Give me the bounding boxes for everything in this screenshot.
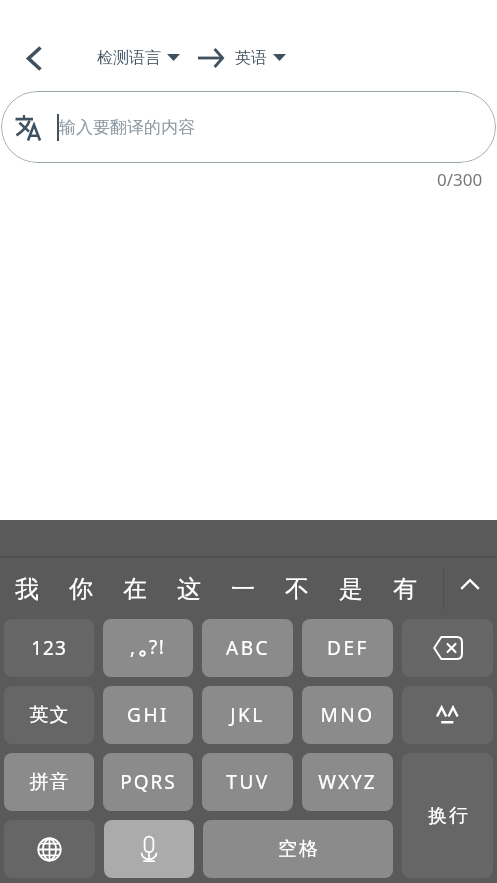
staticText: 输入要翻译的内容: [59, 117, 195, 138]
button[interactable]: 检测语言: [97, 40, 180, 76]
button[interactable]: 我: [0, 558, 54, 619]
staticText: 拼音: [29, 770, 69, 794]
staticText: 我: [15, 574, 39, 604]
button[interactable]: 换行: [402, 753, 493, 878]
staticText: 换行: [427, 804, 469, 828]
button[interactable]: 一: [216, 558, 270, 619]
staticText: TUV: [226, 769, 270, 795]
button[interactable]: ,: [103, 619, 193, 677]
button[interactable]: 这: [162, 558, 216, 619]
staticText: 英语: [235, 48, 267, 68]
button[interactable]: 空格: [203, 820, 393, 878]
button[interactable]: 英文: [4, 686, 94, 744]
button[interactable]: 英语: [235, 40, 286, 76]
staticText: 英文: [29, 703, 69, 727]
staticText: 一: [231, 574, 255, 604]
button[interactable]: 拼音: [4, 753, 94, 811]
button[interactable]: 123: [4, 619, 94, 677]
button[interactable]: Voice input: [104, 820, 194, 878]
staticText: 123: [31, 635, 67, 661]
button[interactable]: 有: [378, 558, 432, 619]
staticText: 是: [339, 574, 363, 604]
button[interactable]: ABC: [202, 619, 293, 677]
staticText: PQRS: [120, 769, 177, 795]
button[interactable]: GHI: [103, 686, 193, 744]
button[interactable]: WXYZ: [302, 753, 393, 811]
staticText: 空格: [277, 837, 319, 861]
staticText: MNO: [320, 702, 375, 728]
staticText: 有: [393, 574, 417, 604]
staticText: 检测语言: [97, 48, 161, 68]
button[interactable]: DEF: [302, 619, 393, 677]
button[interactable]: 输入要翻译的内容: [1, 91, 496, 163]
button[interactable]: Emoji: [402, 686, 493, 744]
staticText: GHI: [127, 702, 169, 728]
button[interactable]: Expand suggestions: [432, 558, 497, 619]
staticText: 不: [285, 574, 309, 604]
button[interactable]: PQRS: [103, 753, 193, 811]
staticText: ?!: [149, 634, 166, 660]
staticText: JKL: [230, 702, 265, 728]
button[interactable]: Back: [0, 28, 68, 88]
staticText: 0/300: [437, 168, 483, 191]
staticText: 你: [69, 574, 93, 604]
button[interactable]: 是: [324, 558, 378, 619]
button[interactable]: MNO: [302, 686, 393, 744]
staticText: 这: [177, 574, 201, 604]
button[interactable]: JKL: [202, 686, 293, 744]
staticText: ABC: [226, 635, 270, 661]
button[interactable]: TUV: [202, 753, 293, 811]
button[interactable]: 不: [270, 558, 324, 619]
staticText: WXYZ: [318, 769, 377, 795]
staticText: ,: [130, 634, 136, 660]
button[interactable]: Switch language: [4, 820, 95, 878]
button[interactable]: Backspace: [402, 619, 493, 677]
staticText: DEF: [327, 635, 369, 661]
button[interactable]: 你: [54, 558, 108, 619]
button[interactable]: 在: [108, 558, 162, 619]
staticText: 在: [123, 574, 147, 604]
